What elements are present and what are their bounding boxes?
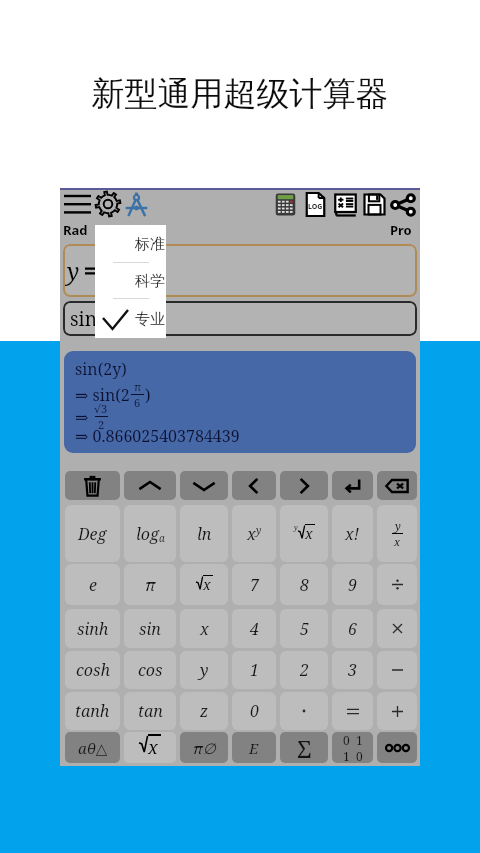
staticText: y	[294, 523, 298, 533]
button[interactable]: 4	[232, 609, 276, 648]
button[interactable]: Σ	[280, 732, 328, 763]
button[interactable]: aθ△	[65, 732, 120, 763]
button[interactable]: 8	[280, 564, 328, 605]
button[interactable]: cos	[124, 651, 176, 689]
button[interactable]: x	[232, 505, 276, 562]
button[interactable]: 专业	[95, 306, 166, 332]
button[interactable]: Up	[124, 471, 176, 500]
button[interactable]: 0	[232, 692, 276, 730]
staticText: x	[394, 534, 401, 549]
button[interactable]: x	[180, 564, 228, 605]
button[interactable]: Enter	[332, 471, 373, 500]
staticText: sin (	[70, 306, 109, 332]
button[interactable]: sinh	[65, 609, 120, 648]
button[interactable]: Compass	[123, 191, 150, 218]
button[interactable]: Save	[362, 192, 387, 217]
button[interactable]: x	[124, 732, 176, 763]
staticText: ln	[197, 523, 212, 545]
staticText: Rad	[63, 221, 88, 239]
button[interactable]: π	[124, 564, 176, 605]
button[interactable]: z	[180, 692, 228, 730]
staticText: ⇒ 0.866025403784439	[75, 425, 240, 447]
staticText: e	[89, 574, 97, 596]
staticText: y	[67, 255, 80, 286]
button[interactable]: cosh	[65, 651, 120, 689]
button[interactable]: E	[232, 732, 276, 763]
button[interactable]	[377, 732, 417, 763]
staticText: sinh	[77, 618, 109, 640]
button[interactable]: 6	[332, 609, 373, 648]
button[interactable]: y	[280, 505, 328, 562]
button[interactable]: π∅	[180, 732, 228, 763]
button[interactable]: 0 1	[332, 732, 373, 763]
button[interactable]: 7	[232, 564, 276, 605]
button[interactable]: Settings	[95, 191, 121, 217]
button[interactable]: Menu	[62, 192, 93, 218]
staticText: 8	[300, 574, 309, 596]
button[interactable]: Down	[180, 471, 228, 500]
staticText: 4	[250, 618, 259, 640]
button[interactable]	[332, 692, 373, 730]
staticText: Σ	[297, 732, 312, 763]
staticText: aθ△	[78, 738, 108, 758]
staticText: 3	[348, 659, 357, 681]
button[interactable]: tanh	[65, 692, 120, 730]
button[interactable]: 科学	[95, 268, 166, 294]
button[interactable]: ln	[180, 505, 228, 562]
button[interactable]: x	[180, 609, 228, 648]
button[interactable]: y	[377, 505, 417, 562]
staticText: π∅	[193, 738, 216, 758]
button[interactable]: Share	[390, 192, 416, 218]
button[interactable]: y	[180, 651, 228, 689]
button[interactable]: x!	[332, 505, 373, 562]
staticText: log	[136, 523, 159, 545]
button[interactable]: Delete	[65, 471, 120, 500]
button[interactable]	[377, 692, 417, 730]
button[interactable]: tan	[124, 692, 176, 730]
button[interactable]: Left	[232, 471, 276, 500]
staticText: x	[247, 523, 256, 545]
button[interactable]: sin (	[63, 301, 417, 336]
staticText: x	[203, 575, 211, 594]
button[interactable]: 5	[280, 609, 328, 648]
button[interactable]: 2	[280, 651, 328, 689]
staticText: 6	[134, 395, 141, 410]
staticText: Pro	[390, 221, 412, 239]
button[interactable]	[377, 564, 417, 605]
button[interactable]: Log	[303, 192, 328, 217]
button[interactable]: y	[63, 244, 417, 297]
staticText: z	[200, 700, 209, 722]
button[interactable]: log	[124, 505, 176, 562]
button[interactable]: e	[65, 564, 120, 605]
staticText: 2	[300, 659, 309, 681]
button[interactable]: 9	[332, 564, 373, 605]
staticText: 标准	[135, 235, 165, 254]
button[interactable]: Backspace	[377, 471, 417, 500]
button[interactable]: 标准	[95, 231, 166, 257]
button[interactable]: Calculator	[273, 192, 298, 217]
staticText: cos	[138, 659, 163, 681]
button[interactable]: sin	[124, 609, 176, 648]
staticText: ⇒	[75, 406, 93, 428]
button[interactable]: 1	[232, 651, 276, 689]
staticText: 0	[250, 700, 259, 722]
button[interactable]: 3	[332, 651, 373, 689]
staticText: π	[145, 574, 156, 596]
staticText: y	[256, 523, 262, 537]
staticText: 1 0	[343, 748, 363, 763]
button[interactable]: Deg	[65, 505, 120, 562]
button[interactable]	[377, 651, 417, 689]
button[interactable]	[377, 609, 417, 648]
staticText: 5	[300, 618, 309, 640]
staticText: sin	[139, 618, 161, 640]
button[interactable]: sin(2y)	[64, 351, 416, 453]
button[interactable]: Right	[280, 471, 328, 500]
button[interactable]: Matrix	[333, 192, 358, 217]
staticText: 专业	[135, 310, 165, 329]
staticText: 7	[250, 574, 259, 596]
staticText: cosh	[76, 659, 110, 681]
staticText: tanh	[75, 700, 110, 722]
staticText: 1	[250, 659, 259, 681]
staticText: 科学	[135, 272, 165, 291]
button[interactable]	[280, 692, 328, 730]
